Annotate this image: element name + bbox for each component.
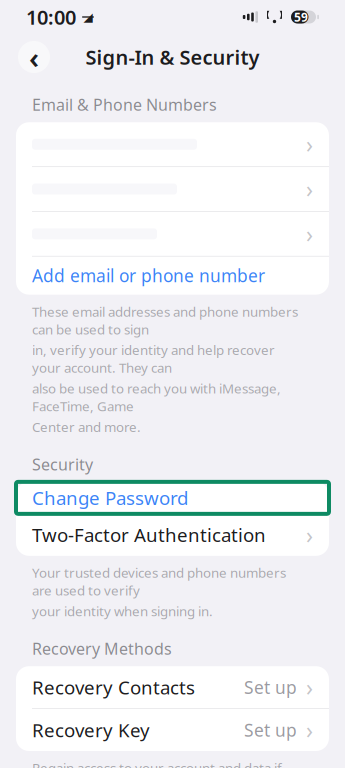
- button[interactable]: Two-Factor Authentication: [16, 514, 329, 556]
- button[interactable]: Recovery Contacts: [16, 666, 329, 708]
- staticText: also be used to reach you with iMessage,…: [32, 379, 281, 415]
- staticText: Set up: [244, 676, 297, 699]
- staticText: Sign-In & Security: [85, 44, 259, 70]
- staticText: Your trusted devices and phone numbers a…: [32, 564, 286, 599]
- staticText: ›: [306, 129, 313, 159]
- staticText: Regain access to your account and data i…: [32, 759, 282, 768]
- staticText: ›: [306, 219, 313, 249]
- staticText: Recovery Methods: [32, 638, 172, 659]
- staticText: in, verify your identity and help recove…: [32, 341, 275, 376]
- staticText: ›: [306, 672, 313, 702]
- staticText: ‹: [29, 37, 39, 76]
- staticText: These email addresses and phone numbers …: [32, 303, 298, 338]
- staticText: ◢: [83, 10, 92, 24]
- staticText: Recovery Contacts: [32, 675, 195, 700]
- staticText: 59: [294, 9, 308, 25]
- button[interactable]: Email or phone number: [16, 167, 329, 211]
- staticText: 10:00: [26, 4, 76, 30]
- staticText: Set up: [244, 718, 297, 741]
- staticText: ›: [306, 520, 313, 550]
- staticText: your identity when signing in.: [32, 602, 213, 620]
- button[interactable]: Recovery Key: [16, 709, 329, 751]
- button[interactable]: Change Password: [16, 483, 329, 513]
- staticText: Recovery Key: [32, 718, 150, 742]
- button[interactable]: Email or phone number: [16, 122, 329, 166]
- staticText: Change Password: [32, 485, 188, 510]
- staticText: Security: [32, 454, 93, 475]
- button[interactable]: Email or phone number: [16, 212, 329, 256]
- staticText: ›: [306, 174, 313, 204]
- staticText: ›: [306, 715, 313, 745]
- button[interactable]: Back: [18, 41, 50, 73]
- staticText: Center and more.: [32, 418, 141, 436]
- staticText: Two-Factor Authentication: [32, 522, 266, 547]
- button[interactable]: Add email or phone number: [16, 257, 329, 295]
- staticText: Add email or phone number: [32, 264, 265, 287]
- staticText: Email & Phone Numbers: [32, 94, 217, 115]
